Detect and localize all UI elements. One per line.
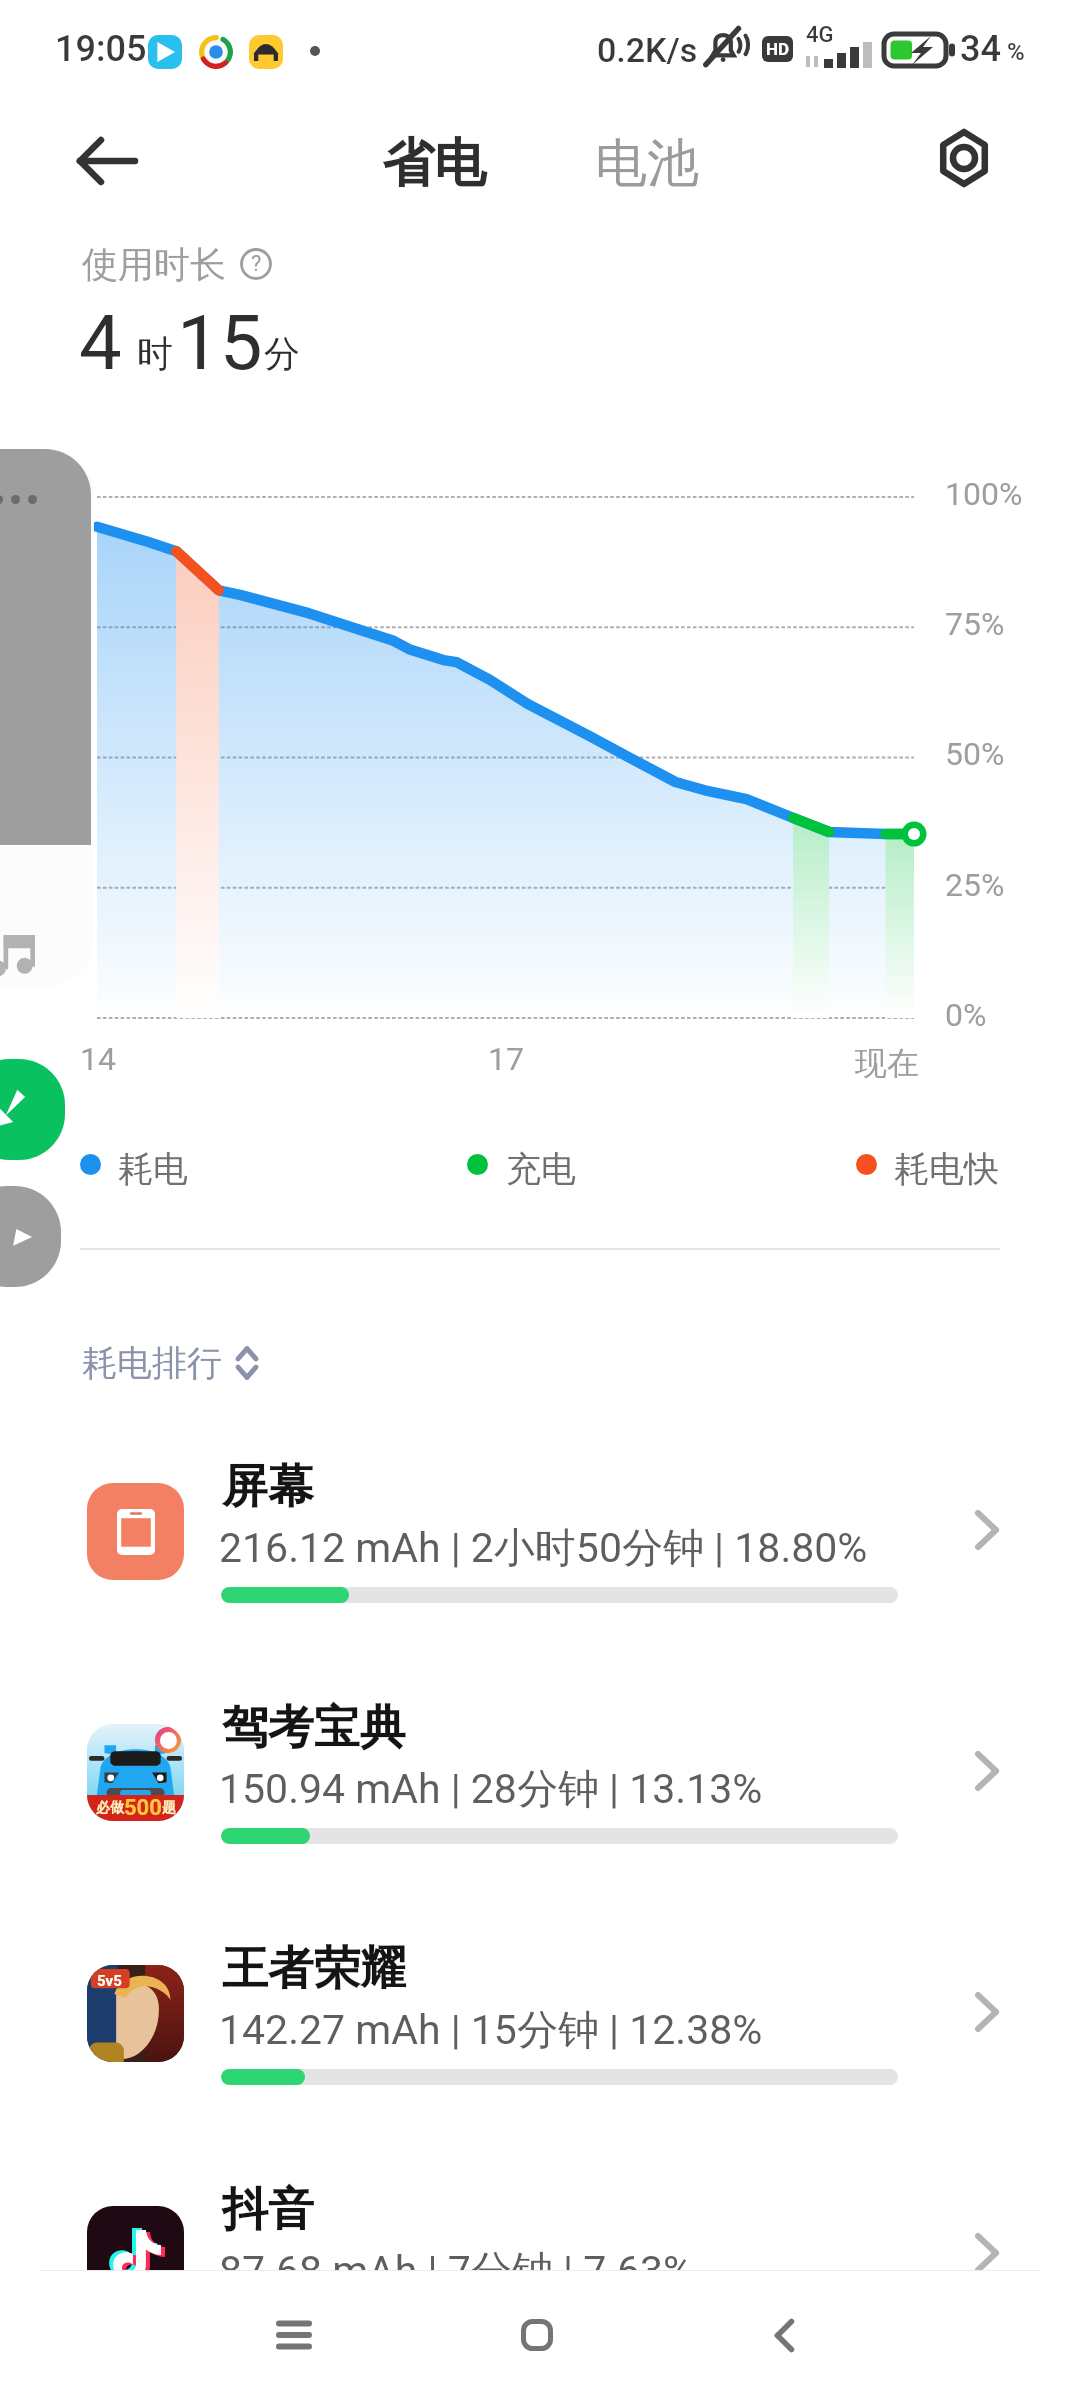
button[interactable]: 耗电排行 [70,1333,270,1393]
button[interactable] [0,1694,1080,1854]
staticText: 75% [945,605,1005,643]
staticText: 25% [945,866,1005,904]
staticText: HD [766,39,790,59]
button[interactable]: 省电 [366,125,502,203]
staticText: 50% [945,735,1005,773]
staticText: % [1007,38,1025,66]
staticText: 题 [162,1799,176,1817]
button[interactable]: Settings [928,122,1000,194]
staticText: 100% [945,475,1023,513]
staticText: ? [251,251,262,277]
button[interactable] [0,2176,1080,2336]
staticText: 216.12 mAh | 2小时50分钟 | 18.80% [219,1523,868,1575]
staticText: 150.94 mAh | 28分钟 | 13.13% [219,1764,763,1816]
staticText: 屏幕 [222,1458,314,1516]
staticText: 19:05 [55,28,147,70]
staticText: 使用时长 [82,242,226,287]
button[interactable] [0,1935,1080,2095]
staticText: 抖音 [222,2181,314,2239]
staticText: 耗电 [118,1147,188,1191]
button[interactable]: 电池 [579,125,715,203]
staticText: 87.68 mAh | 7分钟 | 7.63% [219,2246,694,2298]
staticText: 4 [79,298,122,387]
staticText: 34 [960,28,1001,70]
staticText: 电池 [595,131,699,197]
staticText: 14 [80,1040,116,1078]
button[interactable]: Home [477,2280,597,2390]
staticText: 耗电快 [894,1147,999,1191]
button[interactable]: Recent apps [234,2280,354,2390]
staticText: 现在 [855,1043,919,1083]
staticText: 17 [488,1040,524,1078]
staticText: 耗电排行 [82,1341,222,1385]
staticText: 500 [124,1795,162,1821]
staticText: 0% [945,996,987,1034]
staticText: 王者荣耀 [222,1940,406,1998]
staticText: 0.2K/s [597,30,698,70]
staticText: 必做 [96,1799,124,1817]
staticText: 时 [137,331,173,376]
button[interactable]: Back [70,124,144,198]
staticText: 省电 [382,131,486,197]
staticText: 142.27 mAh | 15分钟 | 12.38% [219,2005,763,2057]
staticText: 分 [264,331,300,376]
staticText: 5v5 [97,1972,122,1990]
button[interactable] [0,1453,1080,1613]
staticText: 驾考宝典 [222,1699,406,1757]
staticText: 充电 [506,1147,576,1191]
staticText: 15 [177,298,263,387]
staticText: 4G [806,22,834,48]
button[interactable]: Back [724,2280,844,2390]
